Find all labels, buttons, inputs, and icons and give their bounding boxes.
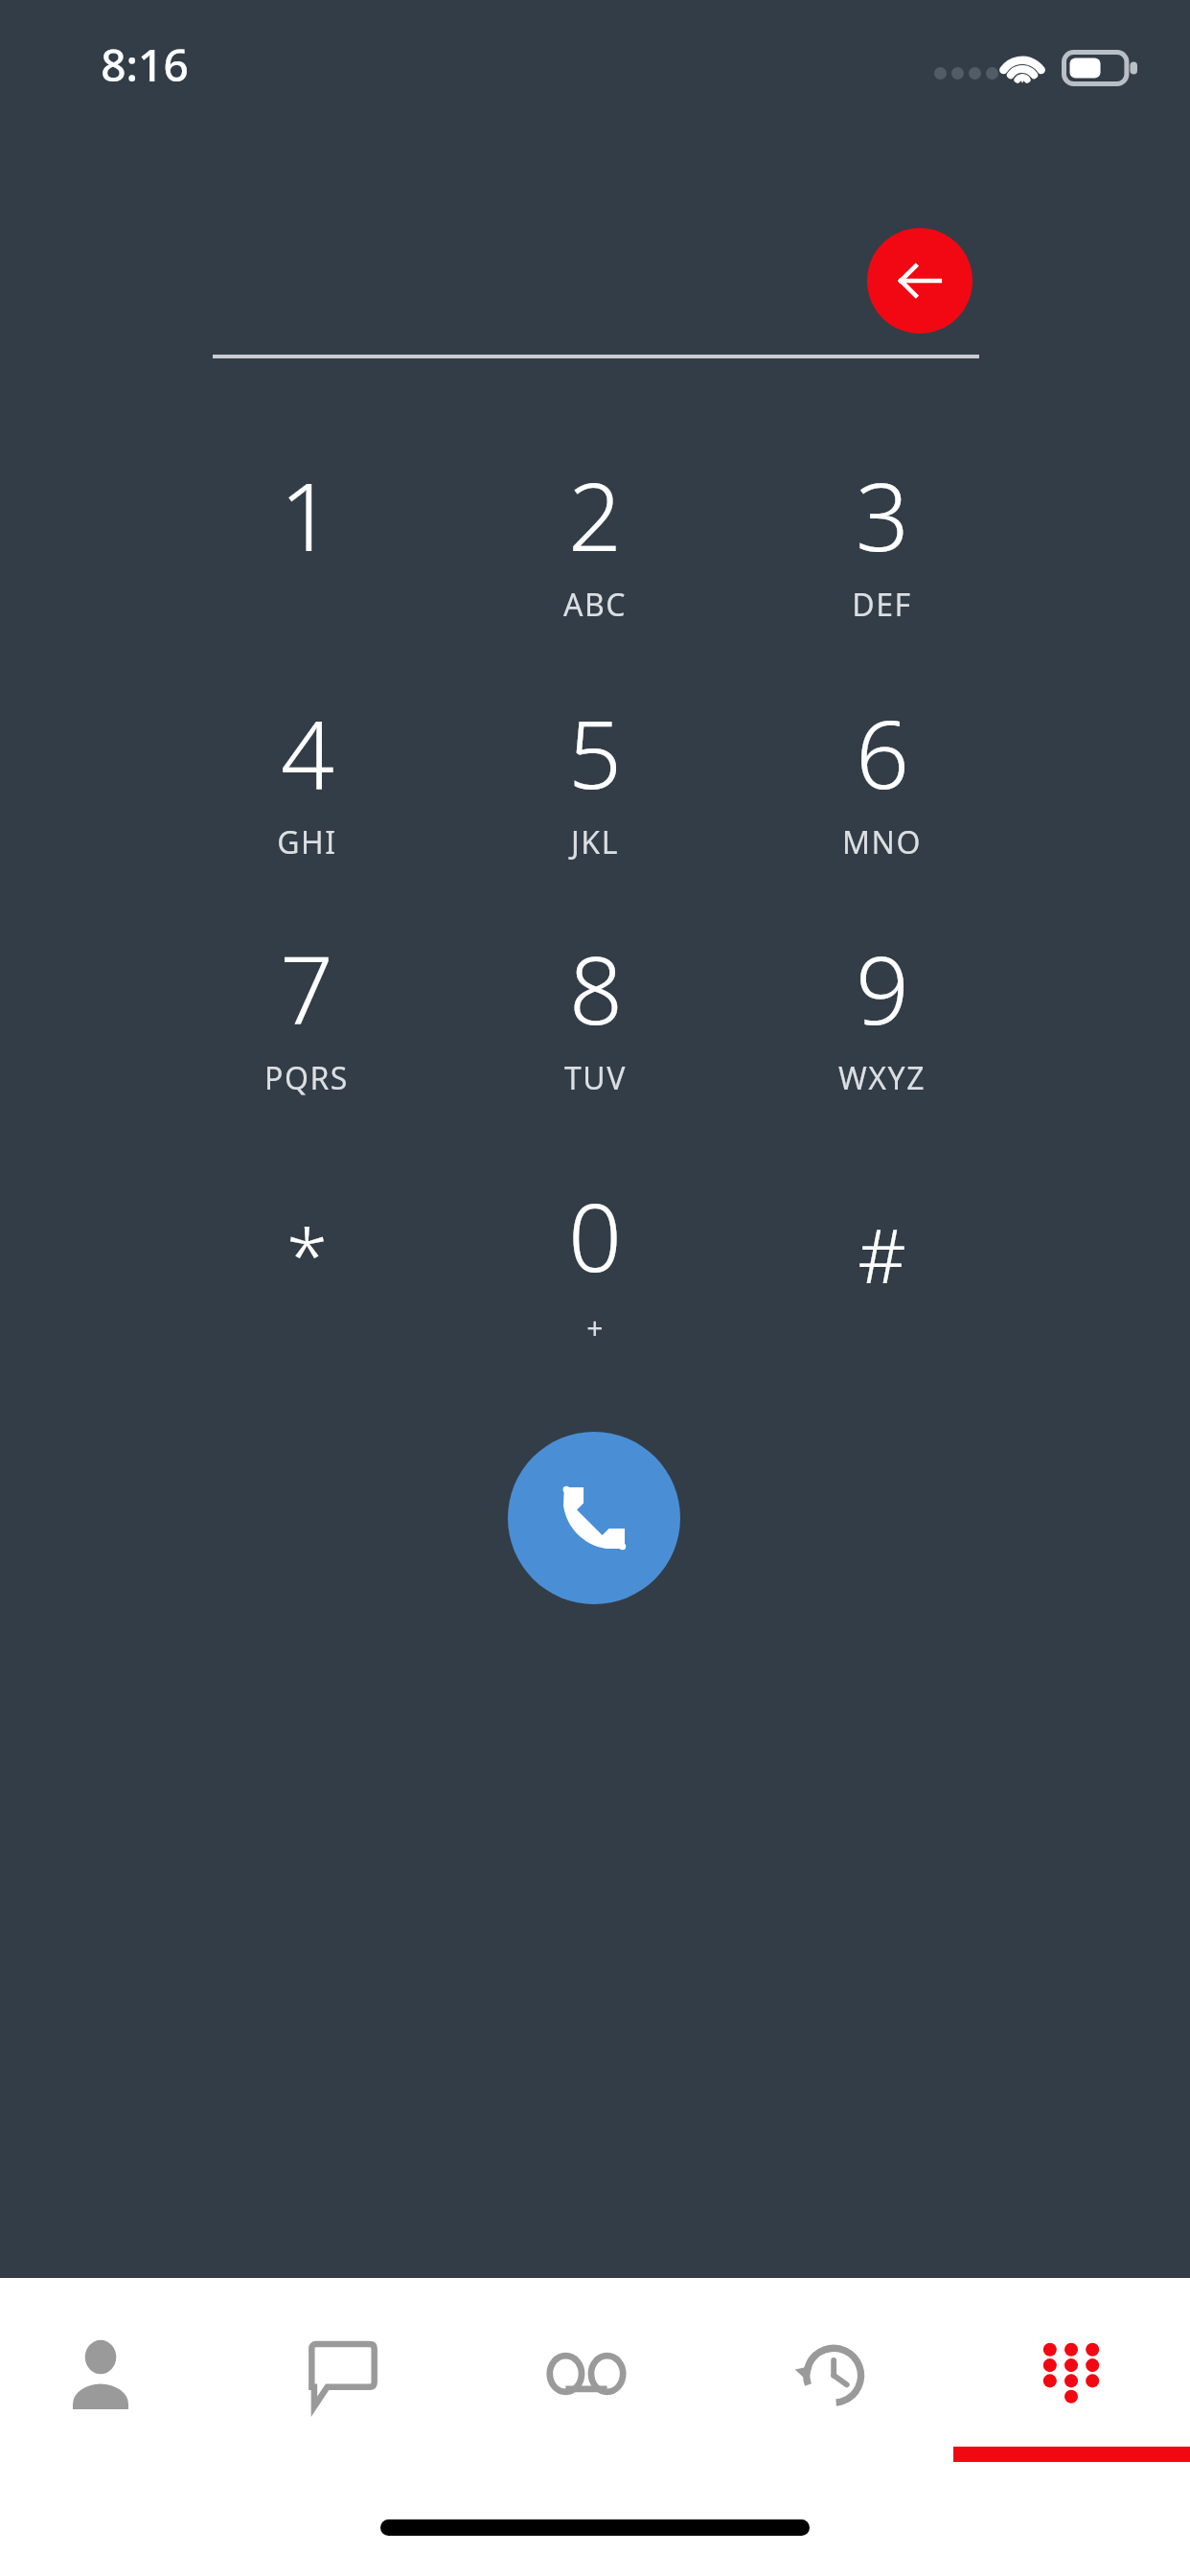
staticText: 5 xyxy=(568,688,622,816)
staticText: MNO xyxy=(842,821,922,863)
button[interactable]: Messages xyxy=(252,2297,434,2450)
button[interactable]: Recents xyxy=(738,2297,920,2450)
staticText: 4 xyxy=(281,688,334,816)
button[interactable]: 7 xyxy=(163,924,450,1144)
button[interactable]: 4 xyxy=(163,688,450,908)
staticText: TUV xyxy=(564,1057,627,1099)
staticText: 1 xyxy=(280,450,333,578)
staticText: 0 xyxy=(568,1171,622,1299)
button[interactable]: 2 xyxy=(451,450,739,671)
button[interactable]: 3 xyxy=(738,450,1025,671)
staticText: ABC xyxy=(563,584,627,626)
button[interactable]: 8 xyxy=(451,924,739,1144)
button[interactable]: 9 xyxy=(738,924,1025,1144)
staticText: + xyxy=(586,1308,605,1347)
button[interactable]: Keypad xyxy=(980,2297,1162,2450)
staticText: 9 xyxy=(856,924,909,1051)
button[interactable]: Contacts xyxy=(10,2297,192,2450)
staticText: JKL xyxy=(571,821,619,863)
staticText: 6 xyxy=(856,688,909,816)
staticText: 8:16 xyxy=(101,34,189,95)
button[interactable]: * xyxy=(163,1171,450,1391)
staticText: GHI xyxy=(277,821,337,863)
staticText: PQRS xyxy=(264,1057,349,1099)
button[interactable]: # xyxy=(738,1171,1025,1391)
button[interactable]: Back xyxy=(867,228,973,333)
staticText: WXYZ xyxy=(838,1057,926,1099)
button[interactable]: 1 xyxy=(163,450,450,671)
staticText: 2 xyxy=(568,450,622,578)
staticText: DEF xyxy=(852,584,912,626)
button[interactable]: 5 xyxy=(451,688,739,908)
button[interactable]: Voicemail xyxy=(495,2297,677,2450)
staticText: # xyxy=(858,1204,906,1305)
button[interactable]: 6 xyxy=(738,688,1025,908)
staticText: 3 xyxy=(856,450,909,578)
staticText: * xyxy=(286,1204,328,1305)
staticText: 8 xyxy=(569,924,623,1051)
button[interactable]: 0 xyxy=(451,1171,739,1391)
button[interactable]: Call xyxy=(508,1432,680,1604)
staticText: 7 xyxy=(280,924,333,1051)
